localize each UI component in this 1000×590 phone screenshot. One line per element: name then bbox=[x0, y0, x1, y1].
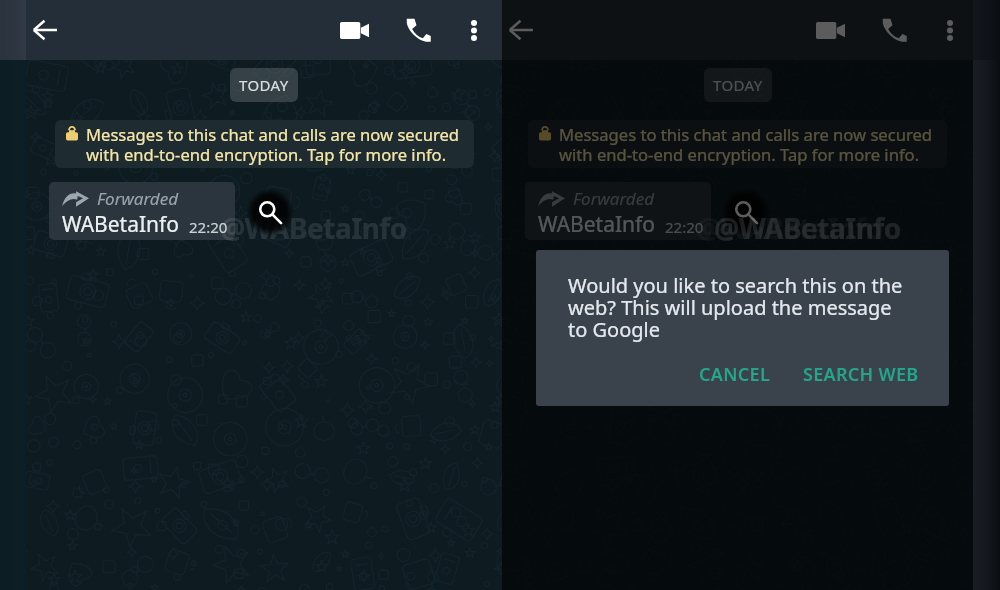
button[interactable]: Voice call bbox=[870, 6, 918, 54]
staticText: SEARCH WEB bbox=[803, 362, 919, 387]
button[interactable]: SEARCH WEB bbox=[789, 353, 933, 396]
button[interactable]: Messages to this chat and calls are now … bbox=[55, 120, 474, 168]
staticText: @WABetaInfo bbox=[714, 209, 901, 247]
button[interactable]: Search bbox=[246, 188, 294, 236]
button[interactable]: TODAY bbox=[230, 68, 298, 102]
staticText: Would you like to search this on the web… bbox=[568, 272, 903, 343]
staticText: Forwarded bbox=[97, 187, 178, 210]
button[interactable]: More options bbox=[450, 6, 498, 54]
staticText: Messages to this chat and calls are now … bbox=[559, 123, 933, 166]
button[interactable]: TODAY bbox=[704, 68, 772, 102]
staticText: 22:20 bbox=[665, 217, 704, 237]
staticText: Messages to this chat and calls are now … bbox=[86, 123, 460, 166]
button[interactable]: Search bbox=[722, 188, 770, 236]
staticText: WABetaInfo bbox=[62, 210, 179, 239]
staticText: @WABetaInfo bbox=[220, 209, 407, 247]
staticText: 22:20 bbox=[189, 217, 228, 237]
staticText: @WABetaInfo bbox=[696, 209, 883, 247]
staticText: TODAY bbox=[239, 75, 289, 95]
button[interactable]: Video call bbox=[330, 6, 378, 54]
staticText: Forwarded bbox=[573, 187, 654, 210]
staticText: TODAY bbox=[713, 75, 763, 95]
button[interactable]: More options bbox=[926, 6, 974, 54]
button[interactable]: CANCEL bbox=[685, 353, 785, 396]
button[interactable]: Forwarded bbox=[525, 182, 711, 240]
button[interactable]: Messages to this chat and calls are now … bbox=[528, 120, 947, 168]
staticText: WABetaInfo bbox=[538, 210, 655, 239]
button[interactable]: Voice call bbox=[394, 6, 442, 54]
button[interactable]: Dismiss dialog bbox=[502, 0, 973, 590]
staticText: CANCEL bbox=[699, 362, 771, 387]
button[interactable]: Forwarded bbox=[49, 182, 235, 240]
button[interactable]: Back bbox=[21, 6, 69, 54]
button[interactable]: Video call bbox=[806, 6, 854, 54]
button[interactable]: Back bbox=[497, 6, 545, 54]
